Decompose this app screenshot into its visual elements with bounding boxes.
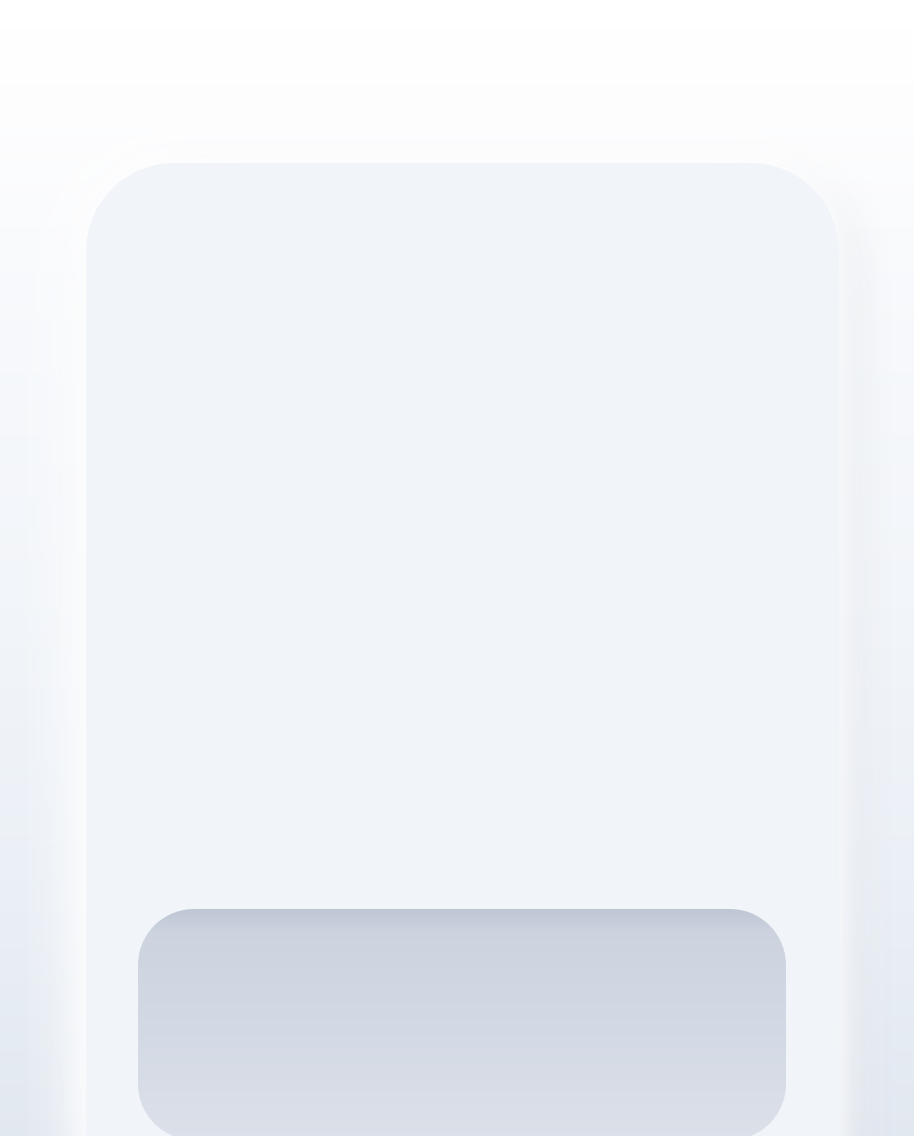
button[interactable]: Primary action — [138, 909, 786, 1136]
